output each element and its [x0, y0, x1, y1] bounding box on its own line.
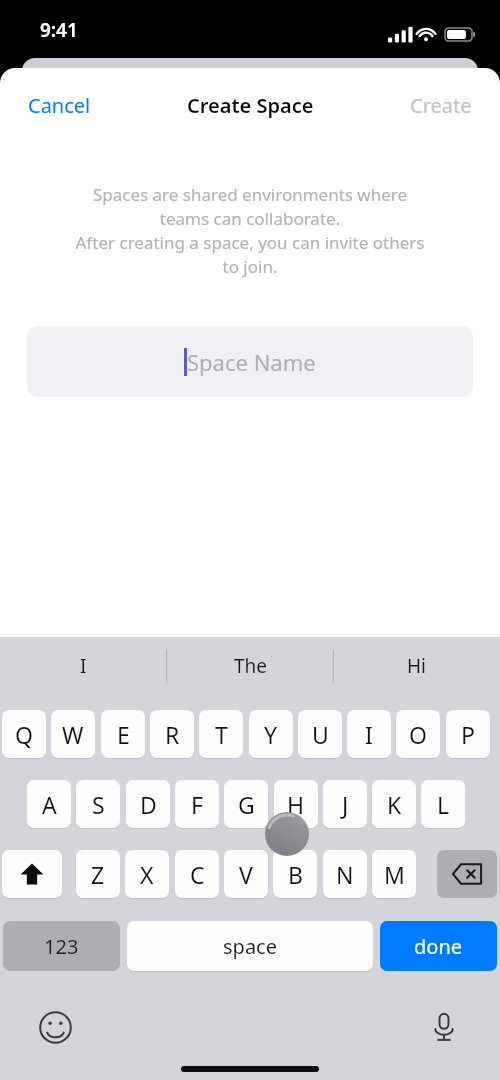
staticText: 9:41	[40, 17, 78, 43]
staticText: space	[223, 933, 277, 960]
button[interactable]: Create	[398, 84, 484, 127]
staticText: R	[165, 719, 180, 750]
button[interactable]: space	[127, 921, 373, 971]
button[interactable]: Space Name	[27, 326, 473, 397]
staticText: Space Name	[187, 347, 316, 377]
staticText: C	[190, 859, 205, 890]
staticText: P	[461, 719, 475, 750]
staticText: J	[342, 789, 349, 820]
button[interactable]: Emoji keyboard	[33, 1005, 77, 1049]
button[interactable]: Z	[76, 850, 120, 898]
button[interactable]: 123	[3, 921, 120, 971]
button[interactable]: V	[224, 850, 268, 898]
button[interactable]: S	[76, 780, 120, 828]
staticText: G	[238, 789, 255, 820]
button[interactable]: F	[175, 780, 219, 828]
staticText: Y	[264, 719, 278, 750]
staticText: M	[384, 859, 405, 890]
staticText: K	[387, 789, 402, 820]
staticText: U	[312, 719, 329, 750]
button[interactable]: K	[372, 780, 416, 828]
staticText: Create	[410, 92, 472, 119]
button[interactable]: Hi	[333, 637, 500, 695]
staticText: E	[117, 719, 130, 750]
button[interactable]: T	[199, 710, 243, 758]
button[interactable]: D	[126, 780, 170, 828]
staticText: The	[234, 653, 268, 679]
staticText: N	[336, 859, 354, 890]
staticText: I	[365, 719, 373, 750]
button[interactable]: Cancel	[16, 84, 103, 127]
staticText: O	[409, 719, 427, 750]
button[interactable]: I	[347, 710, 391, 758]
button[interactable]: C	[175, 850, 219, 898]
staticText: Q	[15, 719, 33, 750]
staticText: T	[215, 719, 228, 750]
button[interactable]: E	[101, 710, 145, 758]
staticText: 123	[44, 933, 79, 960]
button[interactable]: Shift	[2, 850, 62, 898]
button[interactable]: J	[323, 780, 367, 828]
button[interactable]: B	[273, 850, 317, 898]
button[interactable]: L	[421, 780, 465, 828]
button[interactable]: O	[396, 710, 440, 758]
staticText: H	[287, 789, 305, 820]
button[interactable]: X	[125, 850, 169, 898]
staticText: V	[239, 859, 253, 890]
staticText: Hi	[407, 653, 426, 679]
staticText: S	[92, 789, 105, 820]
staticText: Create Space	[187, 92, 314, 119]
button[interactable]: W	[51, 710, 95, 758]
staticText: I	[80, 653, 87, 679]
button[interactable]: Q	[2, 710, 46, 758]
staticText: X	[140, 859, 154, 890]
button[interactable]: Backspace	[437, 850, 497, 898]
button[interactable]: H	[274, 780, 318, 828]
button[interactable]: R	[150, 710, 194, 758]
button[interactable]: Dictation	[422, 1005, 466, 1049]
button[interactable]: I	[0, 637, 167, 695]
staticText: F	[191, 789, 203, 820]
button[interactable]: M	[372, 850, 416, 898]
button[interactable]: A	[27, 780, 71, 828]
button[interactable]: Y	[249, 710, 293, 758]
staticText: Cancel	[28, 92, 91, 119]
staticText: A	[42, 789, 57, 820]
button[interactable]: G	[224, 780, 268, 828]
button[interactable]: U	[298, 710, 342, 758]
staticText: W	[62, 719, 84, 750]
staticText: B	[288, 859, 303, 890]
staticText: Spaces are shared environments where tea…	[18, 183, 482, 278]
button[interactable]: P	[446, 710, 490, 758]
button[interactable]: done	[380, 921, 497, 971]
staticText: D	[140, 789, 157, 820]
button[interactable]: N	[323, 850, 367, 898]
staticText: done	[414, 933, 463, 960]
staticText: Z	[91, 859, 105, 890]
staticText: L	[437, 789, 450, 820]
button[interactable]: The	[167, 637, 334, 695]
